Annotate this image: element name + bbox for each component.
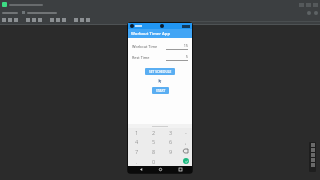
button[interactable]: Rest Time bbox=[132, 53, 188, 61]
staticText: 5 bbox=[166, 54, 188, 59]
staticText: . bbox=[136, 158, 138, 165]
staticText: - bbox=[185, 129, 187, 136]
staticText: 7 bbox=[135, 148, 139, 155]
button[interactable]: Menu action bbox=[314, 11, 318, 15]
staticText: 15 bbox=[166, 43, 188, 48]
staticText: 4 bbox=[135, 138, 139, 145]
staticText: 0 bbox=[152, 158, 156, 165]
button[interactable]: Workout Time bbox=[132, 42, 188, 50]
button[interactable]: Key ok bbox=[179, 156, 192, 166]
staticText: 1 bbox=[135, 129, 139, 136]
button[interactable]: Menu action bbox=[307, 11, 311, 15]
button[interactable]: Key del bbox=[179, 146, 192, 156]
button[interactable]: Key 0 bbox=[145, 156, 162, 166]
button[interactable]: Key 4 bbox=[128, 137, 145, 146]
button[interactable]: Key , bbox=[179, 137, 192, 146]
button[interactable]: SET SCHEDULE bbox=[145, 68, 175, 75]
staticText: , bbox=[185, 138, 187, 145]
staticText: Rest Time bbox=[132, 55, 150, 60]
button[interactable]: Key - bbox=[179, 128, 192, 137]
staticText: START bbox=[156, 89, 166, 93]
staticText: 5 bbox=[152, 138, 156, 145]
button[interactable]: Key 3 bbox=[162, 128, 179, 137]
button[interactable]: Back bbox=[134, 166, 148, 173]
button[interactable]: Key 5 bbox=[145, 137, 162, 146]
staticText: Workout Time bbox=[132, 44, 158, 49]
staticText: 2 bbox=[152, 129, 156, 136]
button[interactable]: Key 6 bbox=[162, 137, 179, 146]
button[interactable]: Key 9 bbox=[162, 146, 179, 156]
button[interactable]: Home bbox=[153, 166, 167, 173]
staticText: 8 bbox=[152, 148, 156, 155]
staticText: Workout Timer App bbox=[131, 31, 171, 37]
staticText: SET SCHEDULE bbox=[149, 70, 172, 74]
staticText: 6 bbox=[169, 138, 173, 145]
staticText: 9 bbox=[169, 148, 173, 155]
button[interactable]: Key 1 bbox=[128, 128, 145, 137]
staticText: 3 bbox=[169, 129, 173, 136]
button[interactable]: Key 2 bbox=[145, 128, 162, 137]
button[interactable]: Key 7 bbox=[128, 146, 145, 156]
button[interactable]: START bbox=[152, 87, 169, 94]
button[interactable]: Recents bbox=[173, 166, 187, 173]
button[interactable]: Key 8 bbox=[145, 146, 162, 156]
